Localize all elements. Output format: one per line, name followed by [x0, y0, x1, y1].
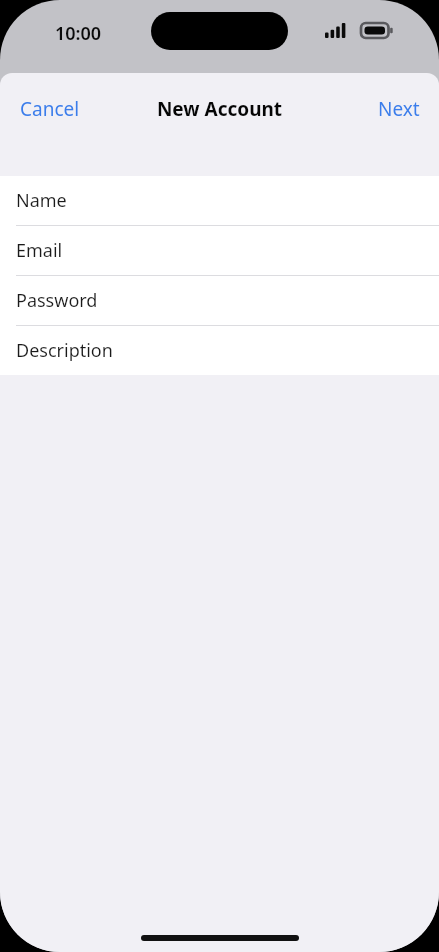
staticText: New Account — [0, 96, 439, 122]
button[interactable]: Cancel — [6, 86, 94, 132]
staticText: Cancel — [20, 96, 80, 122]
staticText: Description — [16, 338, 113, 363]
button[interactable]: Email field — [0, 226, 439, 275]
button[interactable]: Next — [364, 86, 434, 132]
button[interactable]: Description field — [0, 326, 439, 375]
button[interactable]: Name field — [0, 176, 439, 225]
staticText: Name — [16, 188, 67, 213]
staticText: 10:00 — [55, 21, 102, 46]
staticText: Next — [378, 96, 420, 122]
staticText: Email — [16, 238, 63, 263]
staticText: Password — [16, 288, 98, 313]
button[interactable]: Password field — [0, 276, 439, 325]
